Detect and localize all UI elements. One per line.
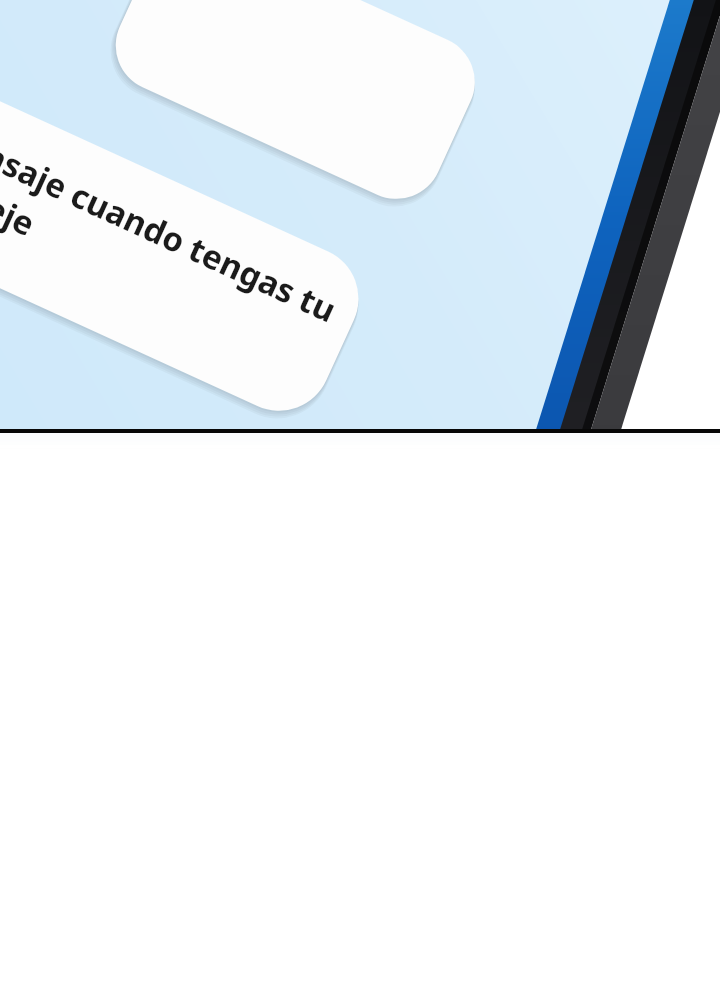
button[interactable]: Chat screenshot: [0, 0, 720, 1000]
